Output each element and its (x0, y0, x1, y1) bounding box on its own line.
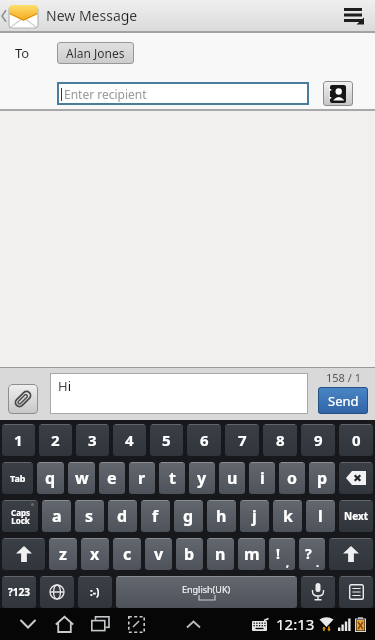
button[interactable]: x (81, 538, 109, 570)
staticText: 4 (125, 430, 134, 450)
button[interactable]: r (129, 462, 155, 494)
button[interactable]: New Message (0, 0, 375, 31)
button[interactable] (329, 538, 373, 570)
staticText: x (90, 543, 100, 565)
button[interactable]: English(UK) (116, 576, 297, 608)
button[interactable] (2, 538, 45, 570)
button[interactable]: 1 (2, 424, 35, 456)
staticText: Next (344, 509, 369, 523)
staticText: 12:13 (276, 614, 315, 634)
staticText: a (52, 505, 62, 527)
button[interactable]: s (75, 500, 104, 532)
button[interactable]: 8 (263, 424, 297, 456)
staticText: 3 (88, 430, 97, 450)
button[interactable]: ? (299, 538, 325, 570)
button[interactable]: t (159, 462, 185, 494)
staticText: h (216, 505, 227, 527)
button[interactable]: e (99, 462, 125, 494)
button[interactable]: w (68, 462, 95, 494)
staticText: , (286, 555, 290, 570)
staticText: p (317, 467, 328, 489)
button[interactable]: d (108, 500, 137, 532)
button[interactable] (339, 576, 373, 608)
staticText: 9 (314, 430, 323, 450)
button[interactable] (124, 612, 148, 636)
staticText: t (169, 467, 176, 489)
button[interactable]: 5 (150, 424, 183, 456)
button[interactable] (335, 0, 375, 31)
button[interactable]: o (279, 462, 305, 494)
button[interactable]: ?123 (2, 576, 36, 608)
button[interactable]: i (249, 462, 275, 494)
staticText: 7 (238, 430, 247, 450)
button[interactable] (301, 576, 335, 608)
staticText: 5 (162, 430, 171, 450)
button[interactable]: 2 (39, 424, 72, 456)
button[interactable]: h (207, 500, 236, 532)
staticText: i (260, 467, 265, 489)
staticText: o (287, 467, 298, 489)
button[interactable] (16, 612, 40, 636)
staticText: 6 (200, 430, 209, 450)
button[interactable]: 0 (339, 424, 373, 456)
staticText: . (316, 555, 320, 570)
button[interactable]: ! (269, 538, 295, 570)
button[interactable]: Send (318, 387, 368, 414)
button[interactable]: a (42, 500, 71, 532)
staticText: r (138, 467, 146, 489)
button[interactable]: Tab (2, 462, 33, 494)
button[interactable]: :-) (78, 576, 112, 608)
button[interactable]: n (207, 538, 234, 570)
staticText: j (252, 505, 257, 527)
button[interactable] (8, 384, 38, 414)
button[interactable] (88, 612, 112, 636)
staticText: ? (305, 544, 312, 563)
staticText: f (152, 505, 159, 527)
button[interactable]: Alan Jones (57, 42, 134, 64)
button[interactable]: v (145, 538, 172, 570)
staticText: g (183, 505, 194, 527)
button[interactable]: f (141, 500, 170, 532)
button[interactable]: 6 (187, 424, 221, 456)
staticText: Send (328, 392, 359, 410)
staticText: v (154, 543, 164, 565)
button[interactable]: g (174, 500, 203, 532)
button[interactable]: m (238, 538, 265, 570)
button[interactable]: 4 (113, 424, 146, 456)
button[interactable]: y (189, 462, 215, 494)
button[interactable]: j (240, 500, 269, 532)
button[interactable]: q (37, 462, 64, 494)
button[interactable] (52, 612, 76, 636)
button[interactable]: 3 (76, 424, 109, 456)
button[interactable]: p (309, 462, 335, 494)
button[interactable]: z (49, 538, 77, 570)
staticText: q (45, 467, 56, 489)
button[interactable] (40, 576, 74, 608)
button[interactable] (339, 462, 373, 494)
staticText: d (117, 505, 128, 527)
button[interactable]: Enter recipient (57, 82, 309, 105)
button[interactable]: 9 (301, 424, 335, 456)
staticText: 2 (51, 430, 60, 450)
button[interactable]: Next (339, 500, 373, 532)
button[interactable] (182, 613, 204, 635)
staticText: Enter recipient (64, 86, 147, 102)
staticText: To (15, 44, 30, 62)
button[interactable]: Caps Lock (2, 500, 38, 532)
button[interactable]: Hi (50, 373, 308, 414)
button[interactable]: l (306, 500, 335, 532)
staticText: s (85, 505, 94, 527)
staticText: w (75, 467, 89, 489)
button[interactable]: 7 (225, 424, 259, 456)
button[interactable] (323, 81, 353, 106)
staticText: b (184, 543, 195, 565)
button[interactable]: b (176, 538, 203, 570)
staticText: :-) (90, 585, 100, 599)
staticText: 0 (352, 430, 361, 450)
button[interactable]: u (219, 462, 245, 494)
button[interactable]: c (113, 538, 141, 570)
staticText: c (123, 543, 132, 565)
button[interactable]: k (273, 500, 302, 532)
staticText: l (318, 505, 323, 527)
staticText: 158 / 1 (326, 370, 361, 385)
